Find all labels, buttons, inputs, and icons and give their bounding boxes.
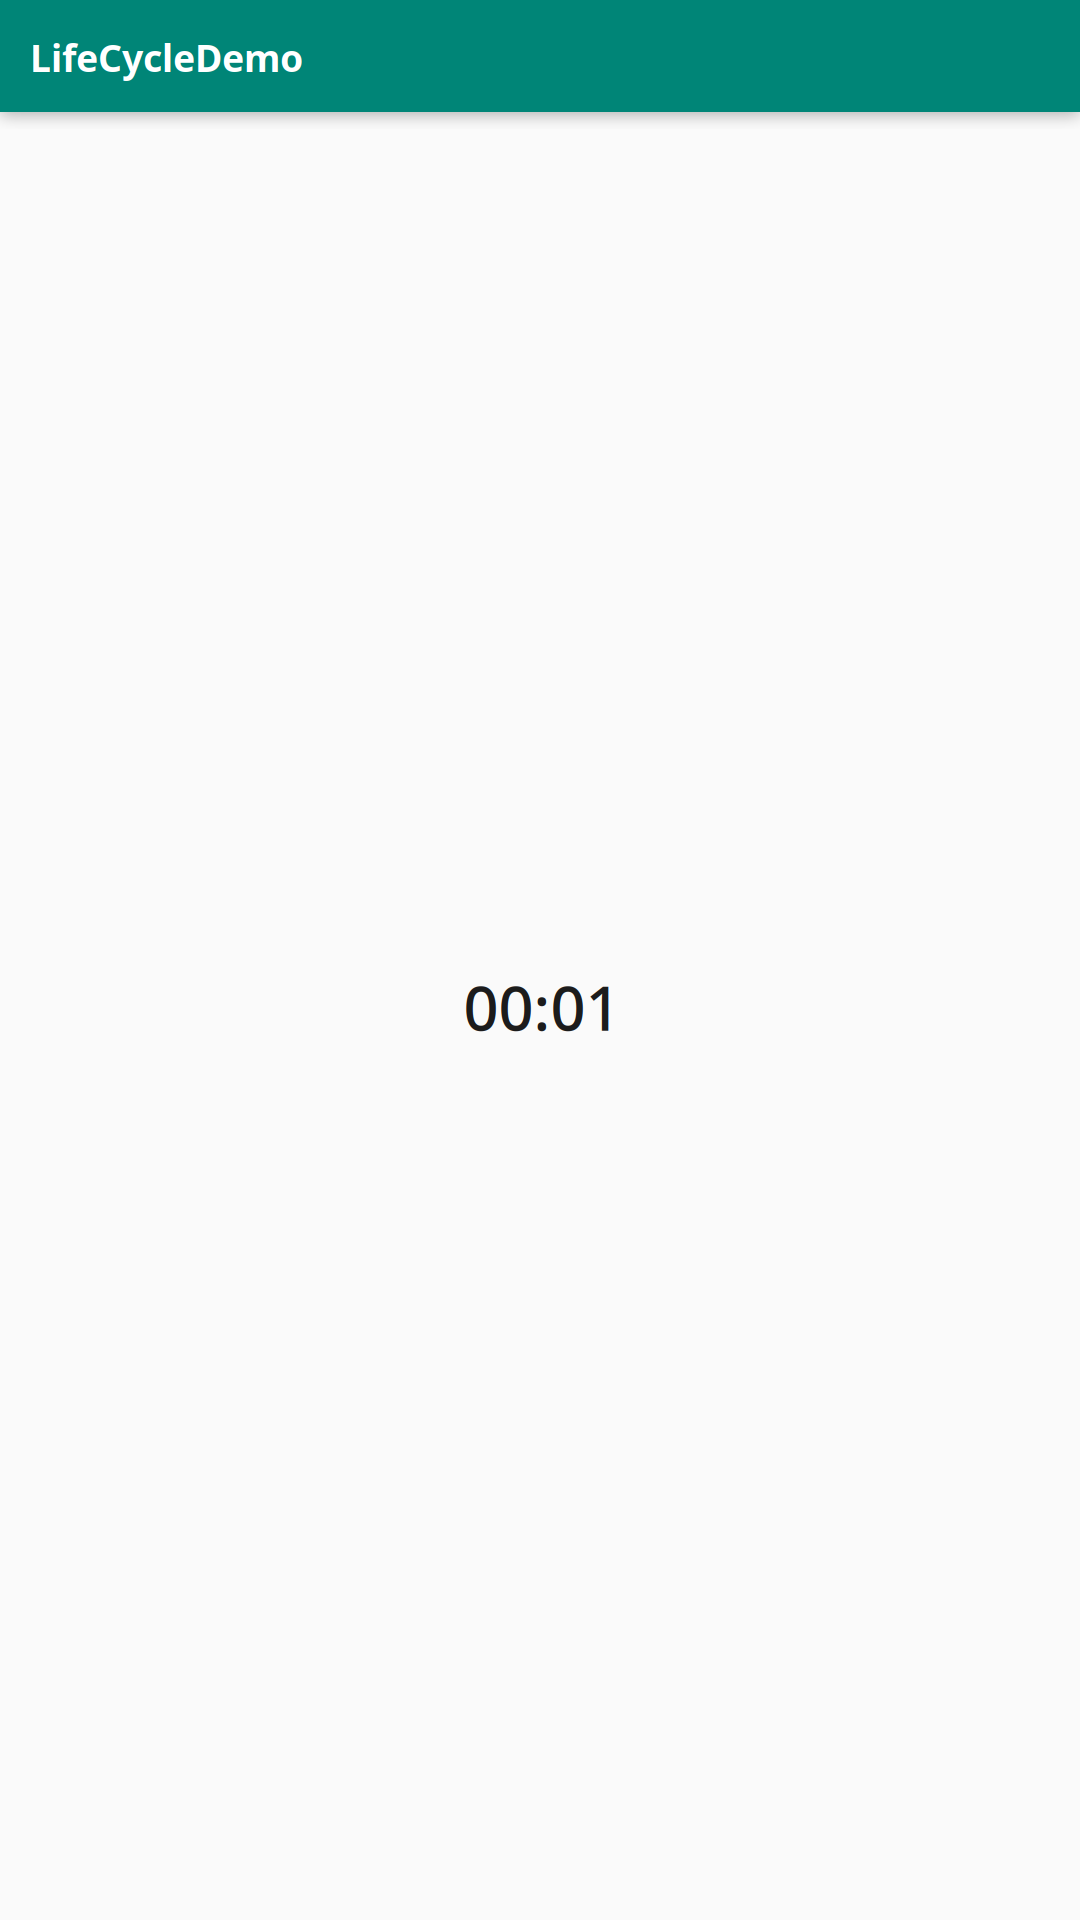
staticText: 00:01 <box>463 966 620 1048</box>
staticText: LifeCycleDemo <box>30 33 303 82</box>
